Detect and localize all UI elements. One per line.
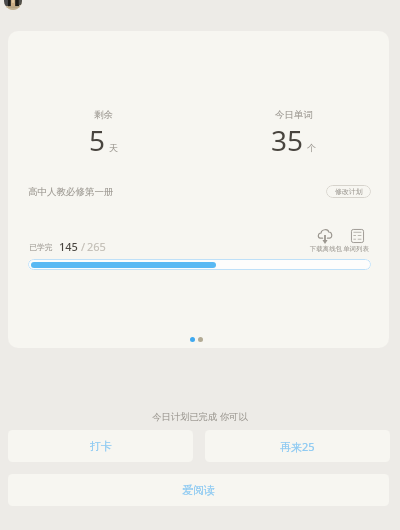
- button[interactable]: Profile: [4, 0, 22, 10]
- staticText: 今日计划已完成 你可以: [0, 410, 400, 423]
- staticText: 爱阅读: [182, 483, 215, 497]
- staticText: 5: [89, 121, 106, 159]
- staticText: 265: [87, 239, 106, 254]
- staticText: 单词列表: [341, 245, 371, 253]
- staticText: 高中人教必修第一册: [28, 186, 114, 198]
- staticText: /: [81, 239, 86, 254]
- button[interactable]: 再来25: [205, 430, 390, 462]
- staticText: 下载离线包: [309, 245, 343, 253]
- staticText: 修改计划: [335, 187, 363, 196]
- button[interactable]: 修改计划: [326, 185, 371, 198]
- staticText: 已学完: [29, 242, 53, 252]
- button[interactable]: 打卡: [8, 430, 193, 462]
- staticText: 剩余: [94, 109, 113, 121]
- button[interactable]: 爱阅读: [8, 474, 389, 506]
- staticText: 再来25: [280, 439, 315, 454]
- staticText: 打卡: [90, 439, 112, 453]
- button[interactable]: Download offline pack: [309, 226, 343, 252]
- staticText: 个: [307, 142, 316, 153]
- staticText: 今日单词: [275, 109, 313, 121]
- staticText: 145: [59, 239, 78, 254]
- staticText: 35: [271, 121, 304, 159]
- button[interactable]: Word list: [341, 226, 371, 252]
- staticText: 天: [109, 142, 118, 153]
